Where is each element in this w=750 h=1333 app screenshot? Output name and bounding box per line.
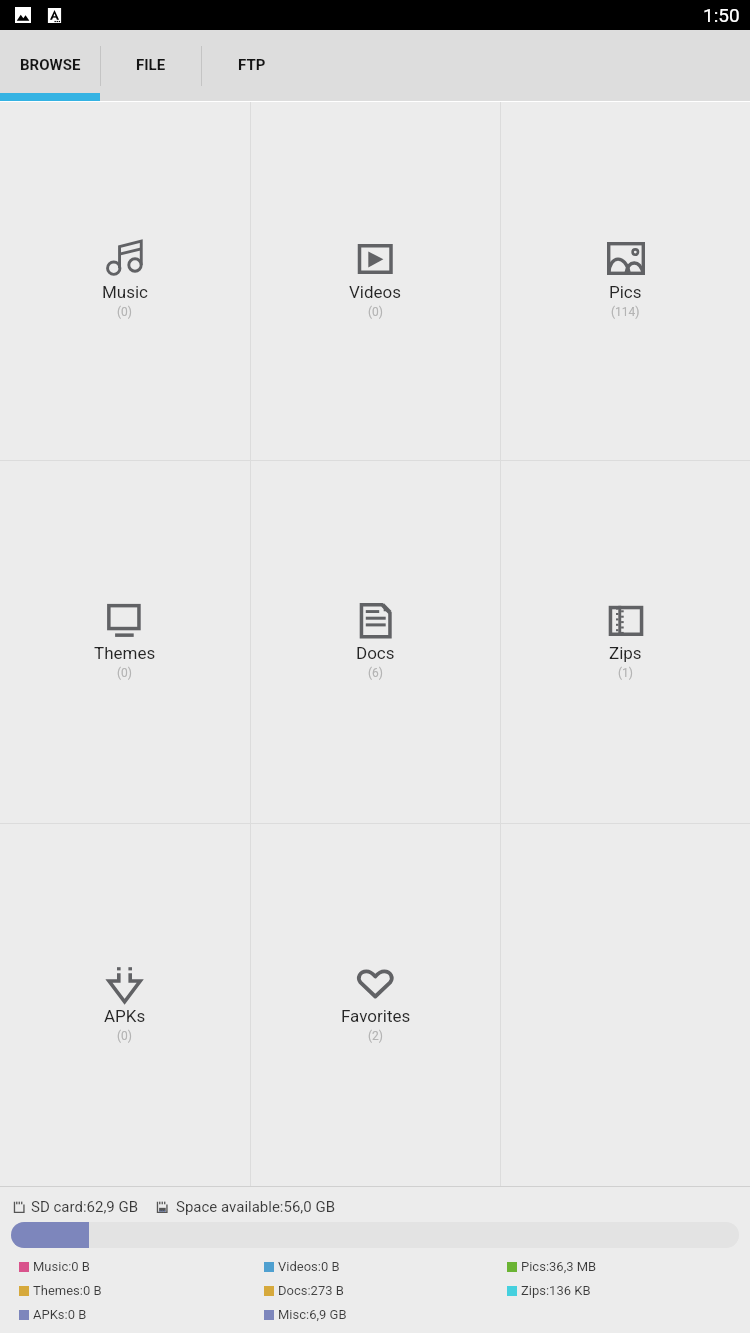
button[interactable]: Zips (501, 461, 750, 823)
button[interactable]: Themes (0, 461, 250, 823)
button[interactable]: Docs (251, 461, 500, 823)
staticText: Music:0 B (33, 1259, 90, 1274)
staticText: Zips (609, 643, 642, 663)
staticText: FTP (238, 56, 266, 74)
staticText: Misc:6,9 GB (278, 1307, 347, 1322)
staticText: (2) (368, 1029, 384, 1043)
button[interactable]: APKs (0, 824, 250, 1186)
staticText: (0) (117, 1029, 133, 1043)
button[interactable]: Videos (251, 102, 500, 460)
staticText: Videos:0 B (278, 1259, 340, 1274)
button[interactable]: Favorites (251, 824, 500, 1186)
staticText: Docs (356, 643, 395, 663)
staticText: Videos (349, 282, 402, 302)
staticText: (1) (618, 666, 634, 680)
staticText: APKs (104, 1006, 146, 1026)
staticText: Themes (94, 643, 156, 663)
staticText: 1:50 (703, 4, 740, 26)
button[interactable]: FILE (101, 30, 201, 102)
button[interactable]: BROWSE (0, 30, 100, 102)
staticText: BROWSE (20, 56, 81, 74)
button[interactable]: Music (0, 102, 250, 460)
staticText: FILE (136, 56, 166, 74)
staticText: Pics (609, 282, 642, 302)
staticText: (0) (117, 666, 133, 680)
button[interactable]: FTP (202, 30, 302, 102)
staticText: SD card:62,9 GB (31, 1198, 139, 1216)
staticText: Space available:56,0 GB (176, 1198, 336, 1216)
staticText: (114) (611, 305, 640, 319)
staticText: Music (102, 282, 149, 302)
staticText: Favorites (341, 1006, 411, 1026)
staticText: Pics:36,3 MB (521, 1259, 597, 1274)
staticText: (0) (117, 305, 133, 319)
staticText: (0) (368, 305, 384, 319)
staticText: (6) (368, 666, 384, 680)
staticText: APKs:0 B (33, 1307, 87, 1322)
staticText: Zips:136 KB (521, 1283, 591, 1298)
button[interactable]: Pics (501, 102, 750, 460)
staticText: Docs:273 B (278, 1283, 344, 1298)
staticText: Themes:0 B (33, 1283, 102, 1298)
